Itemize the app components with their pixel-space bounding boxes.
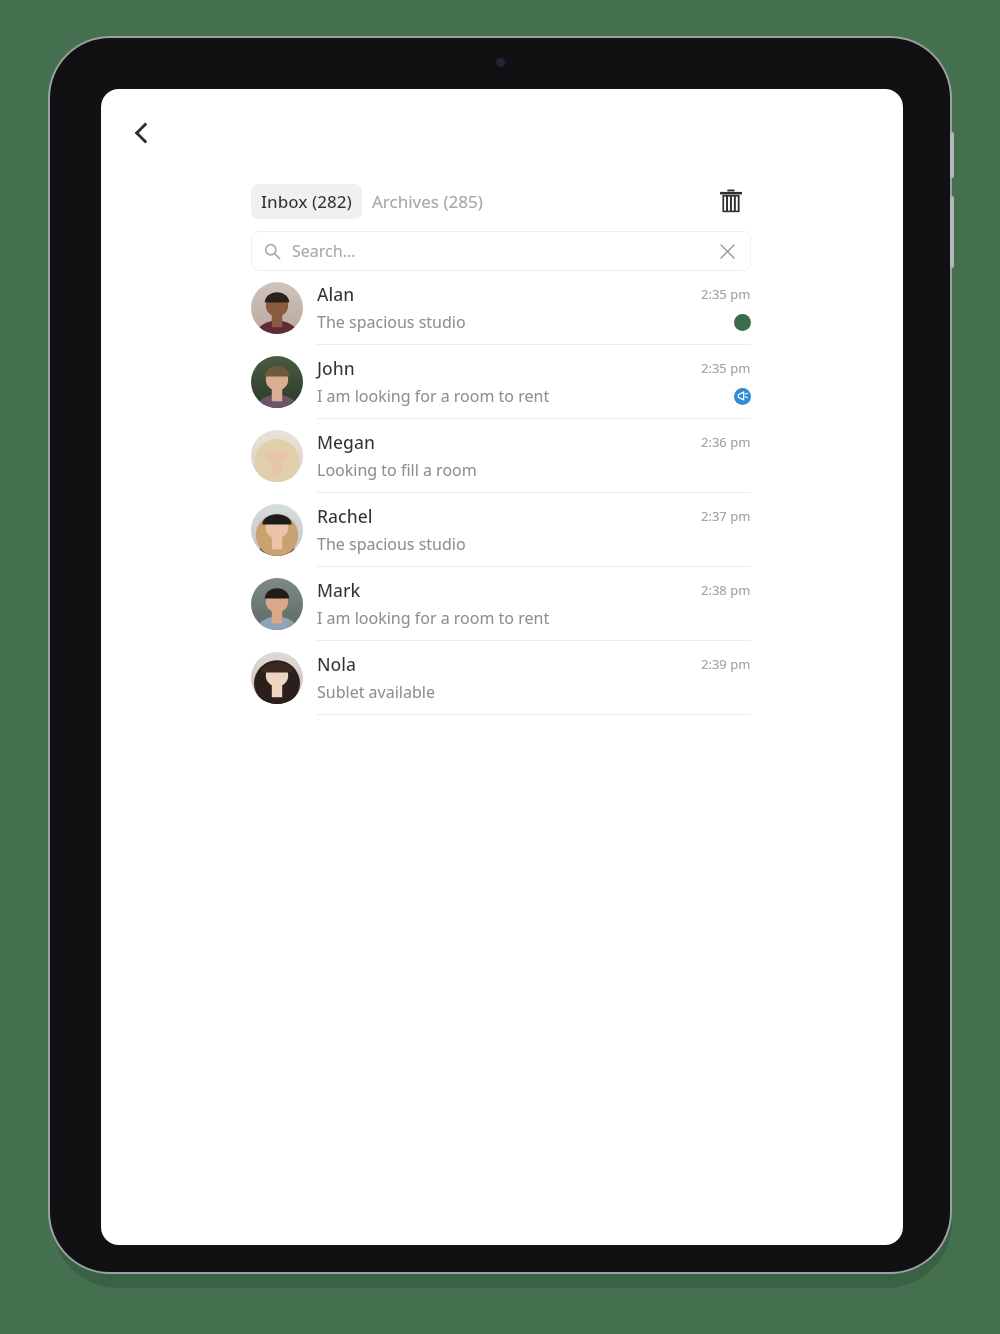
button[interactable]: Inbox (282) [251,184,362,219]
staticText: 2:37 pm [701,507,751,525]
button[interactable]: Alan [251,271,751,345]
staticText: The spacious studio [317,533,466,555]
staticText: Inbox (282) [261,190,352,213]
button[interactable]: Delete [711,181,751,221]
button[interactable]: Mark [251,567,751,641]
button[interactable]: Nola [251,641,751,715]
staticText: 2:38 pm [701,581,751,599]
staticText: Alan [317,282,355,306]
button[interactable]: Rachel [251,493,751,567]
button[interactable]: Clear search [716,240,738,262]
staticText: 2:36 pm [701,433,751,451]
staticText: Search… [292,240,356,262]
button[interactable]: Search… [251,231,751,271]
staticText: Archives (285) [372,190,483,213]
staticText: Nola [317,652,357,676]
staticText: Looking to fill a room [317,459,477,481]
staticText: 2:35 pm [701,285,751,303]
staticText: Megan [317,430,375,454]
staticText: The spacious studio [317,311,466,333]
button[interactable]: Megan [251,419,751,493]
staticText: I am looking for a room to rent [317,607,550,629]
staticText: 2:39 pm [701,655,751,673]
staticText: I am looking for a room to rent [317,385,550,407]
button[interactable]: Archives (285) [362,184,493,219]
button[interactable]: Back [115,107,167,159]
staticText: Sublet available [317,681,435,703]
button[interactable]: John [251,345,751,419]
staticText: John [317,356,355,380]
staticText: Rachel [317,504,373,528]
staticText: 2:35 pm [701,359,751,377]
staticText: Mark [317,578,361,602]
